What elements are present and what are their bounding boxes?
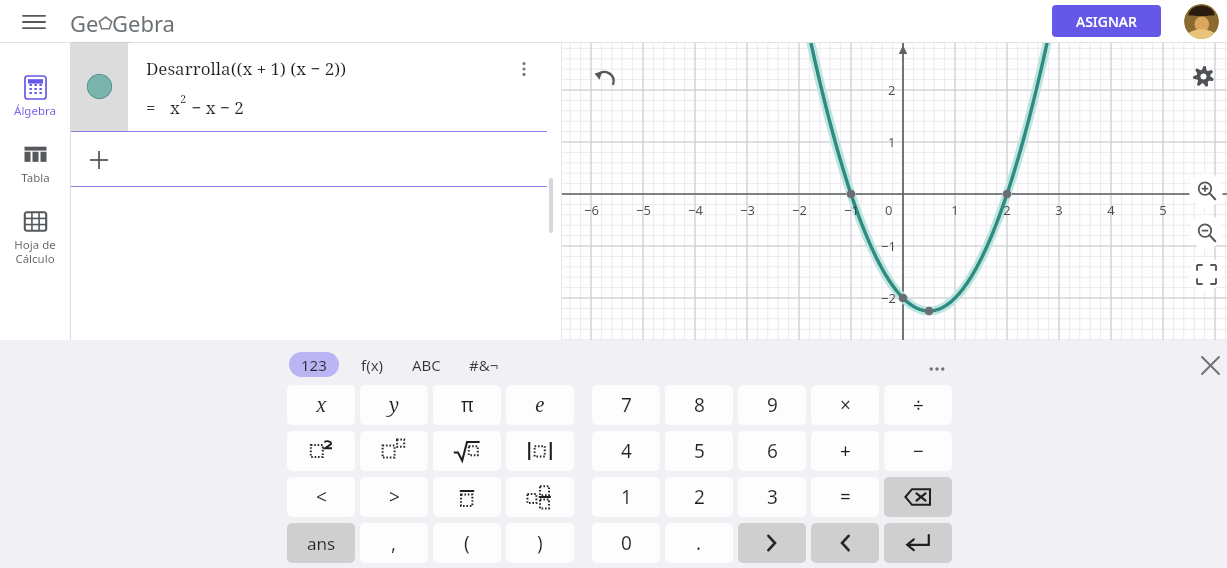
button[interactable]: 9 (738, 385, 806, 425)
button[interactable]: Close keyboard (1195, 350, 1225, 380)
staticText: 123 (301, 355, 327, 375)
button[interactable]: f(x) (353, 352, 392, 377)
button[interactable]: > (360, 477, 428, 517)
staticText: ÷ (913, 392, 924, 418)
button[interactable]: 3 (738, 477, 806, 517)
staticText: + (840, 438, 851, 464)
button[interactable]: #&¬ (461, 352, 507, 377)
button[interactable]: Power (360, 431, 428, 471)
button[interactable]: Square root (433, 431, 501, 471)
staticText: y (389, 392, 400, 418)
button[interactable]: Álgebra (0, 76, 70, 119)
button[interactable]: 5 (665, 431, 733, 471)
staticText: − (913, 438, 924, 464)
staticText: π (461, 392, 474, 418)
staticText: = (840, 484, 851, 510)
button[interactable]: Absolute value (506, 431, 574, 471)
staticText: 5 (694, 438, 705, 464)
staticText: 2 (180, 91, 187, 106)
staticText: f(x) (361, 355, 384, 375)
button[interactable]: − (884, 431, 952, 471)
button[interactable]: ABC (404, 352, 449, 377)
staticText: 6 (767, 438, 778, 464)
button[interactable]: e (506, 385, 574, 425)
button[interactable]: Move left (738, 523, 806, 563)
button[interactable]: π (433, 385, 501, 425)
staticText: 1 (621, 484, 632, 510)
staticText: 7 (621, 392, 632, 418)
button[interactable]: 6 (738, 431, 806, 471)
staticText: 4 (1107, 201, 1115, 219)
button[interactable]: ASIGNAR (1052, 5, 1161, 37)
button[interactable]: Settings (1186, 59, 1220, 93)
button[interactable]: Menu (16, 4, 52, 40)
staticText: ASIGNAR (1076, 12, 1137, 31)
staticText: 3 (1055, 201, 1063, 219)
staticText: < (316, 484, 327, 510)
button[interactable]: Add row (70, 132, 128, 187)
staticText: 9 (767, 392, 778, 418)
staticText: 5 (1159, 201, 1167, 219)
staticText: Tabla (21, 170, 50, 186)
staticText: Álgebra (14, 103, 56, 119)
staticText: −2 (881, 289, 896, 307)
button[interactable]: 123 (289, 352, 339, 377)
staticText: 2 (1003, 201, 1011, 219)
button[interactable]: Backspace (884, 477, 952, 517)
button[interactable]: Move right (811, 523, 879, 563)
staticText: x (316, 392, 327, 418)
staticText: −2 (792, 201, 807, 219)
button[interactable]: 1 (592, 477, 660, 517)
staticText: ( (464, 530, 470, 556)
button[interactable]: y (360, 385, 428, 425)
staticText: 4 (621, 438, 632, 464)
button[interactable]: 8 (665, 385, 733, 425)
button[interactable]: ans (287, 523, 355, 563)
staticText: −1 (881, 237, 896, 255)
button[interactable]: Undo (586, 60, 622, 96)
button[interactable]: ÷ (884, 385, 952, 425)
button[interactable]: More options (506, 51, 542, 87)
button[interactable]: , (360, 523, 428, 563)
button[interactable]: < (287, 477, 355, 517)
staticText: Desarrolla((x + 1) (x − 2)) (146, 57, 347, 80)
button[interactable]: Account (1184, 4, 1219, 39)
button[interactable]: Ge (70, 8, 175, 38)
button[interactable]: Fraction (433, 477, 501, 517)
button[interactable]: Mixed number (506, 477, 574, 517)
staticText: − x − 2 (187, 96, 244, 119)
staticText: , (391, 530, 397, 556)
staticText: 2 (888, 81, 896, 99)
button[interactable]: Toggle visibility (87, 74, 112, 99)
staticText: Hoja de Cálculo (14, 237, 56, 266)
button[interactable]: Zoom in (1189, 173, 1223, 207)
button[interactable]: Standard view (1189, 257, 1223, 291)
staticText: 8 (694, 392, 705, 418)
button[interactable]: Hoja de Cálculo (0, 210, 70, 266)
staticText: 0 (621, 530, 632, 556)
button[interactable]: 2 (665, 477, 733, 517)
button[interactable]: ( (433, 523, 501, 563)
staticText: > (389, 484, 400, 510)
staticText: ABC (412, 355, 441, 375)
staticText: . (696, 530, 702, 556)
staticText: −6 (584, 201, 599, 219)
button[interactable]: Square (287, 431, 355, 471)
staticText: −5 (636, 201, 651, 219)
button[interactable]: × (811, 385, 879, 425)
button[interactable]: . (665, 523, 733, 563)
button[interactable]: Zoom out (1189, 215, 1223, 249)
button[interactable]: ) (506, 523, 574, 563)
staticText: Gebra (112, 8, 175, 38)
button[interactable]: 4 (592, 431, 660, 471)
button[interactable]: = (811, 477, 879, 517)
staticText: 2 (694, 484, 705, 510)
button[interactable]: More (920, 352, 954, 386)
button[interactable]: Enter (884, 523, 952, 563)
button[interactable]: 7 (592, 385, 660, 425)
button[interactable]: 0 (592, 523, 660, 563)
button[interactable]: + (811, 431, 879, 471)
staticText: −4 (688, 201, 703, 219)
button[interactable]: Tabla (0, 143, 70, 186)
button[interactable]: x (287, 385, 355, 425)
